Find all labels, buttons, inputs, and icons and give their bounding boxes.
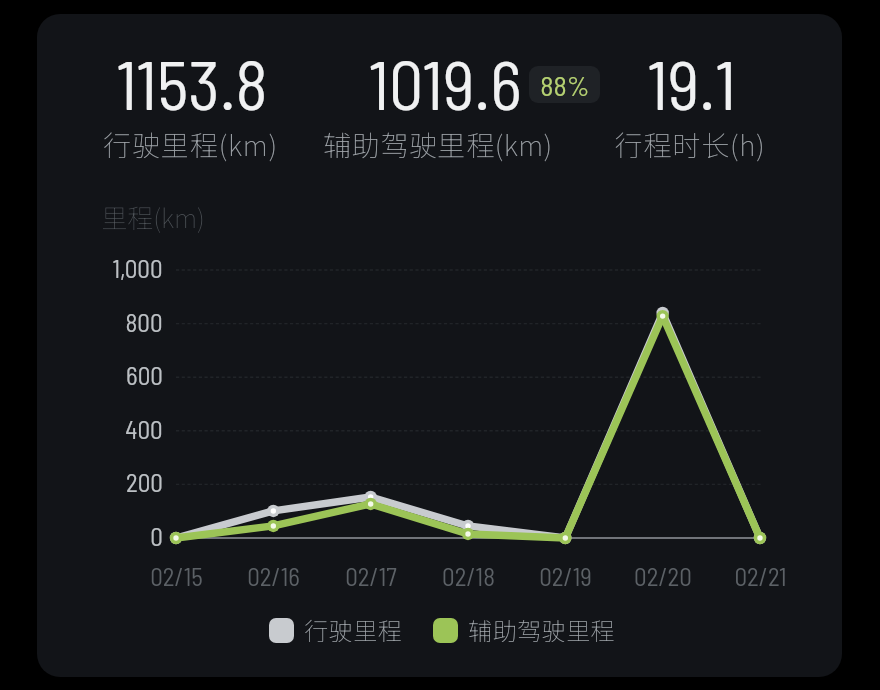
staticText: 辅助驾驶里程(km) [323, 124, 553, 165]
staticText: 辅助驾驶里程 [468, 612, 615, 642]
staticText: 400 [125, 414, 163, 444]
staticText: 1019.6 [368, 42, 522, 124]
staticText: 02/21 [734, 561, 787, 591]
staticText: 19.1 [647, 42, 736, 124]
button[interactable]: 行驶里程 [269, 615, 402, 645]
button[interactable]: 行驶里程 1153.8 公里 [76, 48, 308, 164]
staticText: 1153.8 [116, 42, 268, 124]
button[interactable]: 辅助驾驶占比 88% [529, 66, 600, 103]
staticText: 行驶里程(km) [103, 124, 278, 165]
staticText: 800 [125, 307, 163, 337]
staticText: 600 [126, 360, 163, 390]
staticText: 里程(km) [101, 198, 205, 236]
staticText: 02/16 [247, 561, 300, 591]
staticText: 02/19 [539, 561, 592, 591]
staticText: 02/17 [345, 561, 397, 591]
staticText: 02/18 [442, 561, 495, 591]
staticText: 1,000 [112, 253, 163, 283]
staticText: 200 [126, 467, 163, 497]
staticText: 行驶里程 [304, 612, 402, 642]
staticText: 0 [150, 521, 163, 551]
button[interactable]: 行程时长 19.1 小时 [596, 48, 786, 164]
button[interactable]: 辅助驾驶里程 [433, 615, 615, 645]
staticText: 02/15 [150, 561, 203, 591]
staticText: 行程时长(h) [614, 124, 766, 165]
button[interactable]: 行驶数据统计卡片 [37, 14, 842, 677]
button[interactable]: 辅助驾驶里程 1019.6 公里 [320, 48, 570, 164]
staticText: 02/20 [634, 561, 692, 591]
staticText: 88% [540, 68, 590, 102]
